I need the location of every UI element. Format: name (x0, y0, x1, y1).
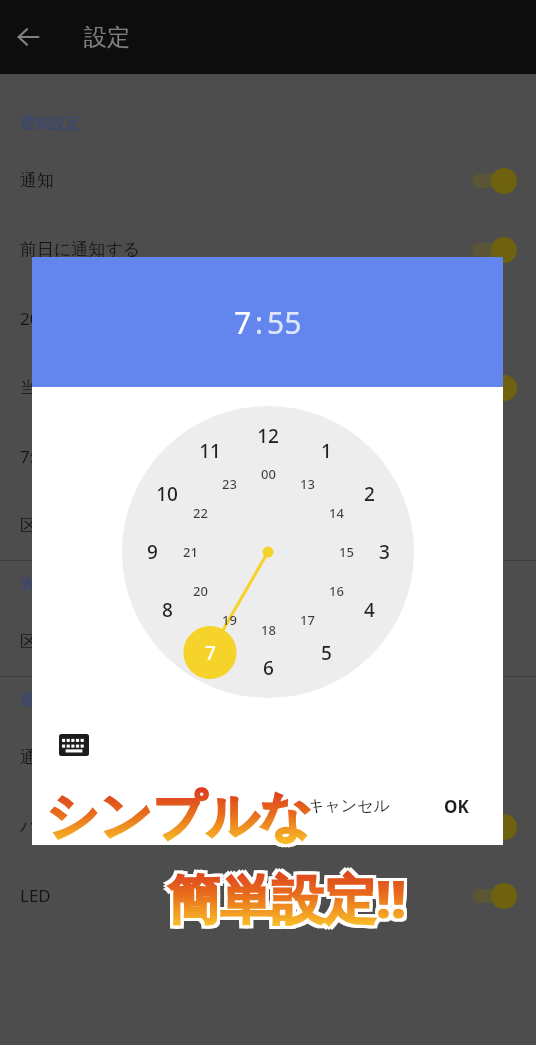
staticText: キャンセル (308, 796, 390, 816)
button[interactable]: Back (0, 9, 56, 65)
staticText: 簡単設定!! (168, 865, 407, 936)
staticText: シンプルな (49, 787, 316, 853)
staticText: 10 (156, 481, 178, 507)
staticText: 15 (339, 543, 354, 561)
staticText: 7 (205, 640, 216, 666)
staticText: 20 (193, 582, 208, 600)
staticText: シンプルな (46, 787, 313, 853)
staticText: : (255, 302, 264, 343)
staticText: 8 (162, 597, 173, 623)
staticText: 6 (263, 655, 274, 681)
button[interactable]: 7:55 (0, 422, 536, 491)
button[interactable]: キャンセル (294, 788, 404, 824)
button[interactable]: 区切り (0, 607, 536, 676)
staticText: シンプルな (49, 784, 316, 850)
staticText: 13 (300, 475, 315, 493)
staticText: 7:55 (20, 445, 54, 468)
staticText: 簡単設定!! (168, 859, 407, 930)
staticText: 簡単設定!! (168, 862, 407, 933)
button[interactable]: 通知音 (0, 723, 536, 792)
staticText: 55 (267, 302, 302, 343)
staticText: 00 (261, 465, 276, 483)
staticText: 11 (199, 438, 221, 464)
button[interactable]: 通知 (0, 146, 536, 215)
staticText: 7 (234, 302, 252, 343)
staticText: 通知方法 (20, 691, 80, 710)
staticText: 前日に通知する (20, 239, 141, 260)
staticText: 23 (222, 475, 237, 493)
staticText: 簡単設定!! (171, 862, 410, 933)
staticText: 設定 (84, 23, 130, 52)
staticText: 区切り (20, 631, 72, 652)
button[interactable]: 55 (267, 302, 302, 343)
staticText: 16 (329, 582, 344, 600)
staticText: 12 (257, 423, 279, 449)
button[interactable]: OK (430, 787, 483, 826)
staticText: 3 (379, 539, 390, 565)
staticText: 20:00 (20, 307, 64, 330)
staticText: シンプルな (43, 781, 310, 847)
staticText: 1 (321, 438, 332, 464)
staticText: 通知 (20, 170, 54, 191)
staticText: 表示設定 (20, 575, 80, 594)
staticText: シンプルな (46, 781, 313, 847)
staticText: シンプルな (49, 781, 316, 847)
staticText: 簡単設定!! (165, 865, 404, 936)
staticText: LED (20, 884, 51, 907)
button[interactable]: 当日に通知する (0, 353, 536, 422)
staticText: 区切り (20, 515, 72, 536)
staticText: 簡単設定!! (171, 865, 410, 936)
staticText: 簡単設定!! (165, 859, 404, 930)
staticText: バイブレーション (20, 816, 159, 837)
staticText: 22 (193, 504, 208, 522)
staticText: 簡単設定!! (165, 862, 404, 933)
staticText: シンプルな (43, 784, 310, 850)
button[interactable]: バイブレーション (0, 792, 536, 861)
staticText: シンプルな (46, 784, 313, 850)
button[interactable]: LED (0, 861, 536, 930)
staticText: シンプルな (43, 787, 310, 853)
staticText: 当日に通知する (20, 377, 141, 398)
staticText: 2 (364, 481, 375, 507)
staticText: 9 (147, 539, 158, 565)
staticText: 14 (329, 504, 344, 522)
button[interactable]: 前日に通知する (0, 215, 536, 284)
staticText: 21 (183, 543, 198, 561)
button[interactable]: 7 (234, 302, 252, 343)
staticText: 4 (364, 597, 375, 623)
staticText: OK (444, 795, 469, 818)
staticText: 通知設定 (20, 114, 80, 133)
staticText: 18 (261, 621, 276, 639)
staticText: 17 (300, 611, 315, 629)
staticText: 5 (321, 640, 332, 666)
button[interactable]: Switch to text input (54, 725, 94, 765)
button[interactable]: 区切り (0, 491, 536, 560)
staticText: 簡単設定!! (171, 859, 410, 930)
button[interactable]: 20:00 (0, 284, 536, 353)
staticText: 19 (222, 611, 237, 629)
staticText: 通知音 (20, 747, 71, 768)
